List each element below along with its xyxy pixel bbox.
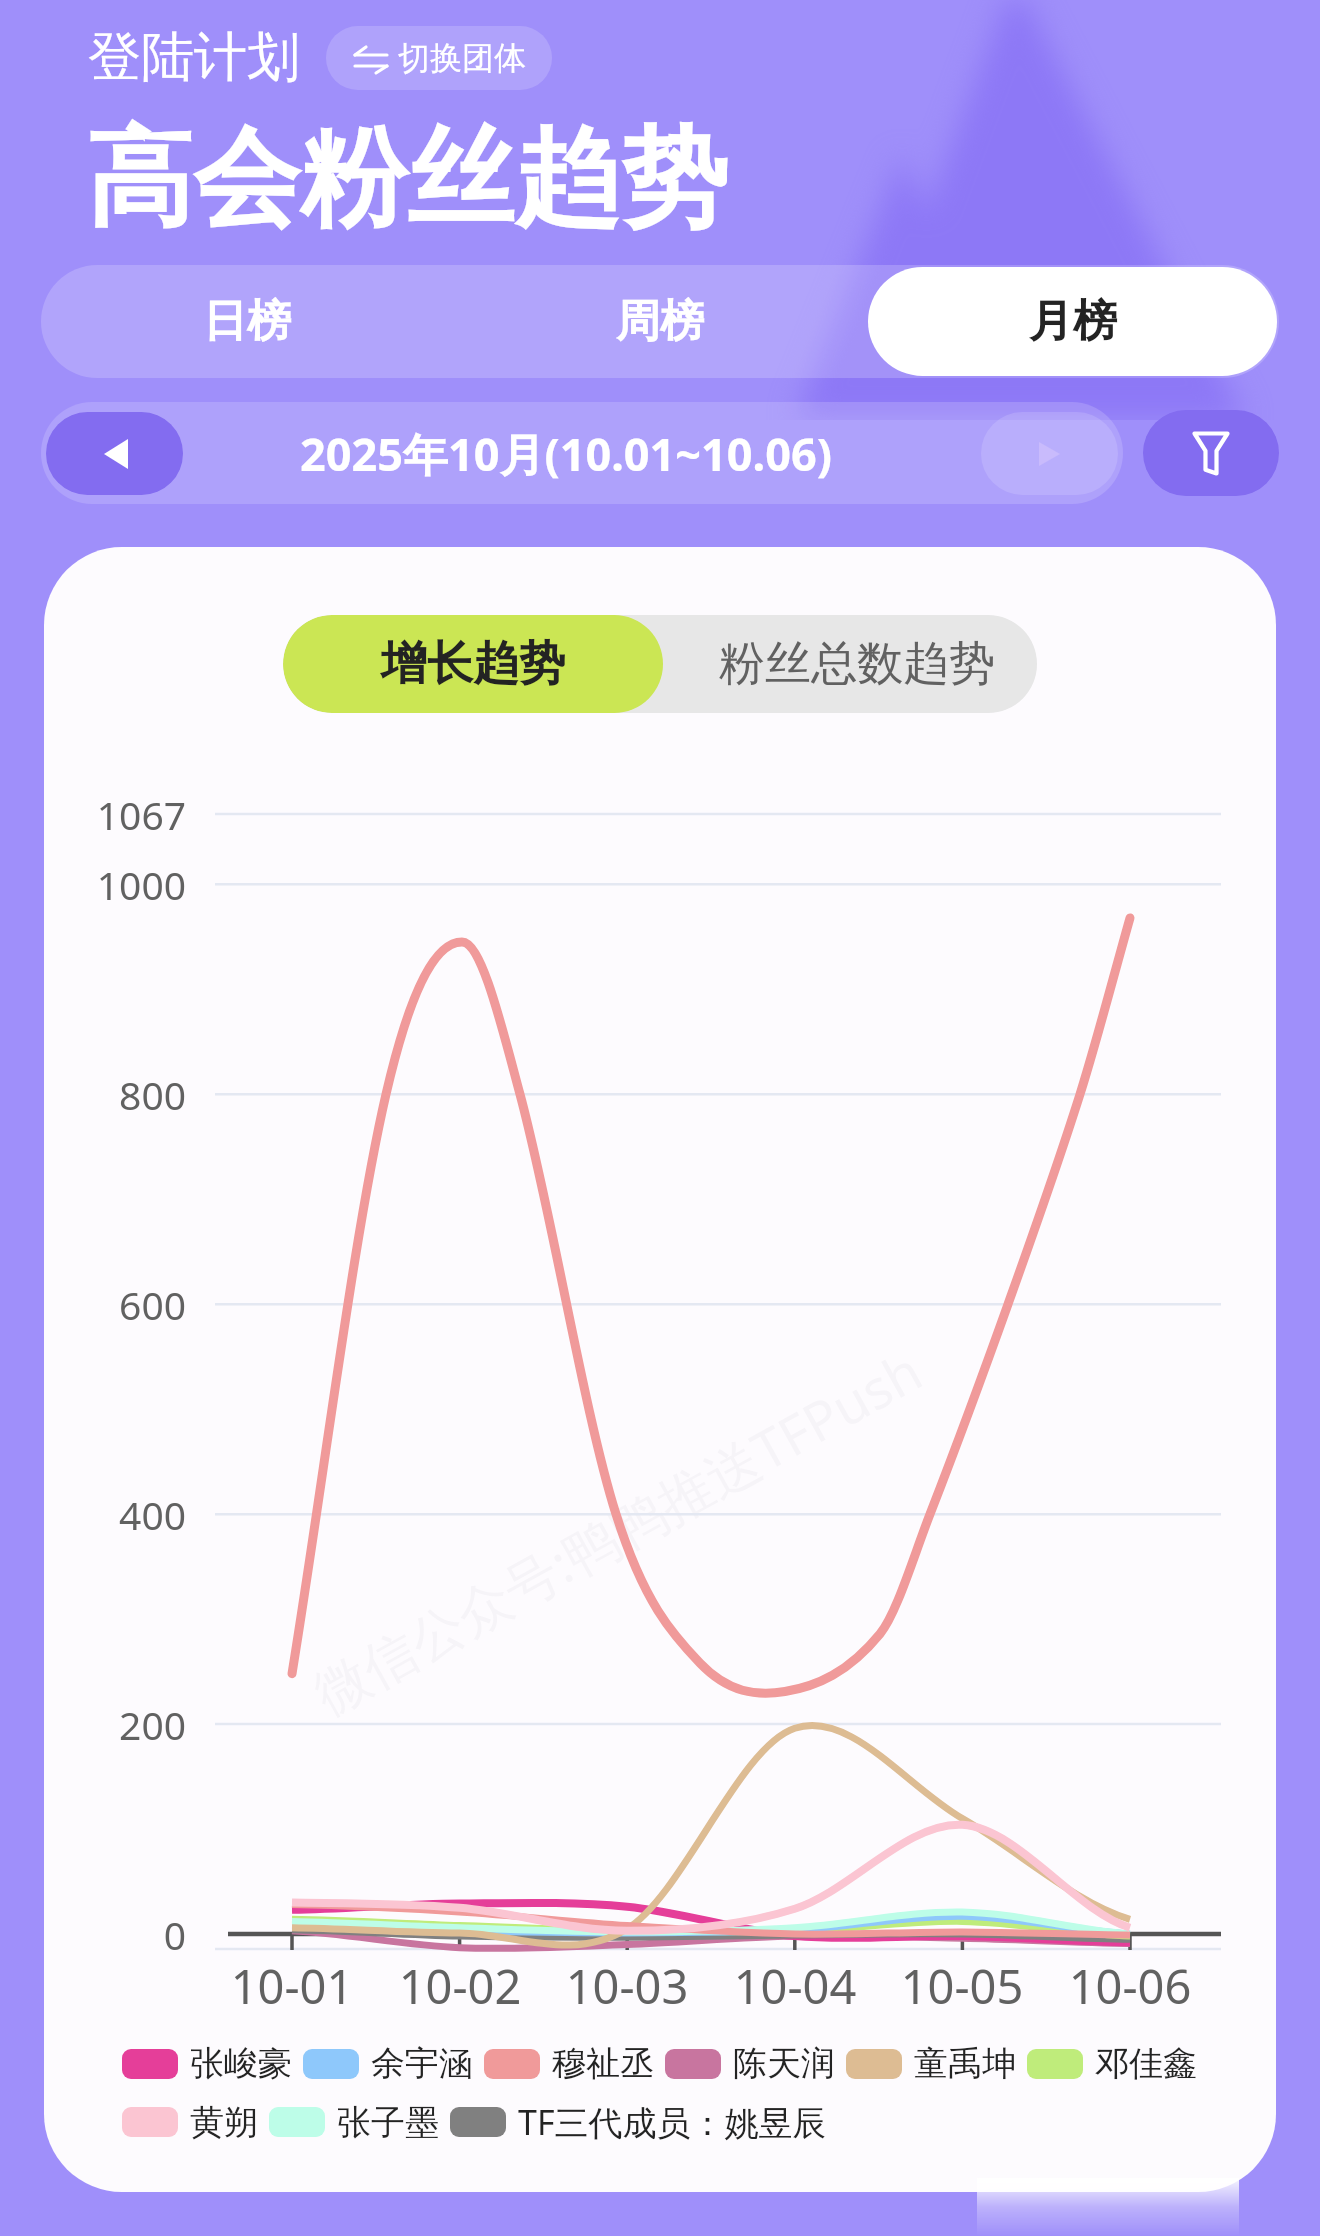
staticText: TF三代成员：姚昱辰 (518, 2099, 827, 2145)
staticText: 邓佳鑫 (1095, 2042, 1197, 2085)
staticText: 黄朔 (190, 2101, 258, 2144)
button[interactable]: Next period (981, 412, 1118, 495)
staticText: 切换团体 (398, 38, 526, 78)
staticText: 高会粉丝趋势 (86, 112, 728, 247)
staticText: 粉丝总数趋势 (719, 635, 995, 693)
staticText: 400 (36, 1488, 186, 1541)
staticText: 余宇涵 (371, 2042, 473, 2085)
staticText: 600 (36, 1278, 186, 1331)
staticText: 登陆计划 (88, 24, 300, 91)
staticText: 1067 (36, 788, 186, 841)
button[interactable]: 周榜 (455, 267, 864, 376)
button[interactable]: 切换团体 (326, 26, 552, 90)
button[interactable]: 增长趋势 (283, 615, 663, 713)
button[interactable]: Filter (1143, 410, 1279, 496)
staticText: 月榜 (1029, 294, 1117, 349)
staticText: 10-06 (1040, 1954, 1220, 2018)
button[interactable]: Previous period (46, 412, 183, 495)
staticText: 10-01 (202, 1954, 382, 2018)
staticText: 0 (36, 1908, 186, 1961)
staticText: 微信公众号:鸭鸭推送TFPush (300, 1333, 934, 1729)
staticText: 200 (36, 1698, 186, 1751)
staticText: 张子墨 (337, 2101, 439, 2144)
button[interactable]: 月榜 (868, 267, 1277, 376)
staticText: 800 (36, 1068, 186, 1121)
staticText: 增长趋势 (381, 635, 565, 693)
staticText: 10-04 (705, 1954, 885, 2018)
button[interactable]: 粉丝总数趋势 (663, 615, 1037, 713)
staticText: 1000 (36, 858, 186, 911)
staticText: 日榜 (203, 294, 291, 349)
staticText: 10-05 (872, 1954, 1052, 2018)
staticText: 10-02 (370, 1954, 550, 2018)
staticText: 张峻豪 (190, 2042, 292, 2085)
staticText: 10-03 (537, 1954, 717, 2018)
staticText: 童禹坤 (914, 2042, 1016, 2085)
staticText: 陈天润 (733, 2042, 835, 2085)
staticText: 2025年10月(10.01~10.06) (300, 423, 832, 484)
staticText: 穆祉丞 (552, 2042, 654, 2085)
button[interactable]: 日榜 (43, 267, 451, 376)
staticText: 周榜 (616, 294, 704, 349)
